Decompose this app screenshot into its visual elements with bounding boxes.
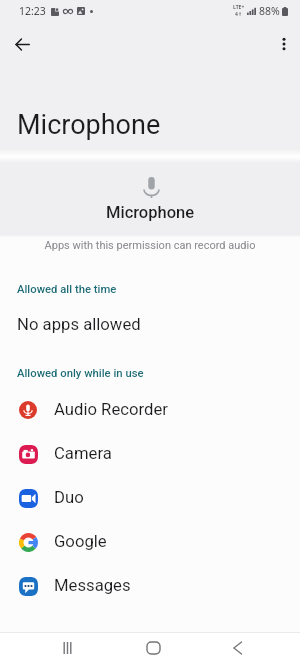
- staticText: Google: [54, 532, 107, 552]
- button[interactable]: Home: [131, 631, 175, 665]
- button[interactable]: Back: [6, 28, 38, 60]
- staticText: LTE+: [233, 4, 245, 11]
- staticText: Camera: [54, 444, 112, 464]
- button[interactable]: Recent apps: [45, 631, 89, 665]
- staticText: 88%: [259, 4, 280, 18]
- button[interactable]: Duo: [0, 476, 300, 520]
- button[interactable]: Audio Recorder: [0, 388, 300, 432]
- staticText: Duo: [54, 488, 84, 508]
- staticText: Audio Recorder: [54, 400, 168, 420]
- staticText: Messages: [54, 576, 131, 596]
- button[interactable]: Back: [215, 631, 259, 665]
- button[interactable]: Google: [0, 520, 300, 564]
- staticText: 12:23: [19, 4, 46, 18]
- staticText: Allowed all the time: [17, 283, 117, 296]
- button[interactable]: More options: [268, 28, 300, 60]
- staticText: Allowed only while in use: [17, 367, 144, 380]
- staticText: Microphone: [106, 203, 195, 222]
- button[interactable]: Camera: [0, 432, 300, 476]
- button[interactable]: Messages: [0, 564, 300, 608]
- staticText: Microphone: [17, 109, 161, 141]
- staticText: 4↑: [235, 11, 243, 18]
- staticText: Apps with this permission can record aud…: [0, 239, 300, 252]
- staticText: No apps allowed: [17, 315, 141, 335]
